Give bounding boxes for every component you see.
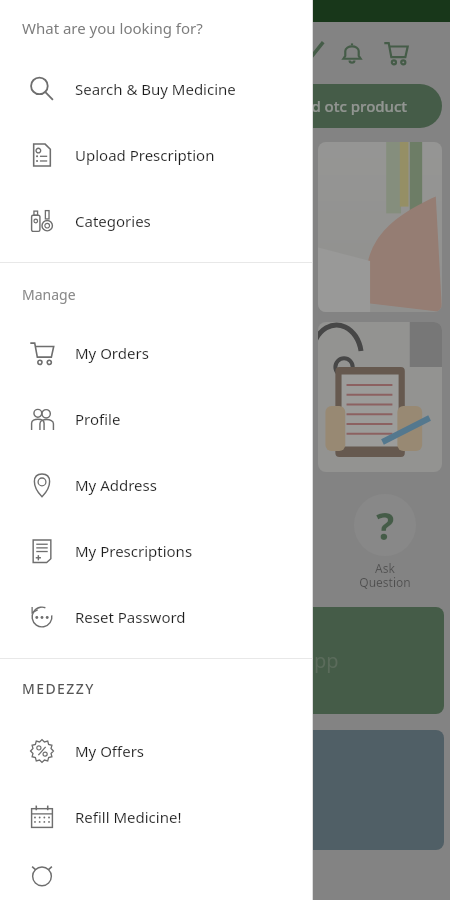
button[interactable]: Notifications xyxy=(330,31,374,75)
button[interactable]: Verified xyxy=(290,33,330,73)
staticText: ? xyxy=(376,499,395,551)
button[interactable]: ? xyxy=(330,494,440,591)
staticText: Refill Medicine! xyxy=(75,807,182,827)
staticText: My Address xyxy=(75,475,157,495)
button[interactable]: Categories xyxy=(0,188,313,254)
staticText: What are you looking for? xyxy=(22,18,203,38)
staticText: My Prescriptions xyxy=(75,541,193,561)
button[interactable]: Cart xyxy=(374,31,418,75)
button[interactable]: My Offers xyxy=(0,718,313,784)
button[interactable]: Search & Buy Medicine xyxy=(0,56,313,122)
staticText: Search & Buy Medicine xyxy=(75,79,236,99)
button[interactable]: My Address xyxy=(0,452,313,518)
button[interactable] xyxy=(318,142,442,312)
staticText: Categories xyxy=(75,211,151,231)
staticText: pp xyxy=(314,647,339,674)
button[interactable]: Refill Medicine! xyxy=(0,784,313,850)
staticText: MEDEZZY xyxy=(22,679,95,698)
button[interactable]: Profile xyxy=(0,386,313,452)
staticText: Manage xyxy=(22,285,76,304)
staticText: nd otc product xyxy=(302,96,408,116)
button[interactable]: My Orders xyxy=(0,320,313,386)
button[interactable]: My Prescriptions xyxy=(0,518,313,584)
staticText: Profile xyxy=(75,409,121,429)
staticText: Upload Prescription xyxy=(75,145,215,165)
button[interactable] xyxy=(300,730,444,850)
staticText: Reset Password xyxy=(75,607,186,627)
staticText: My Offers xyxy=(75,741,145,761)
button[interactable] xyxy=(318,322,442,472)
staticText: Ask Question xyxy=(359,560,411,591)
button[interactable]: pp xyxy=(300,607,444,714)
button[interactable]: Reset Password xyxy=(0,584,313,650)
staticText: My Orders xyxy=(75,343,149,363)
button[interactable]: Upload Prescription xyxy=(0,122,313,188)
button[interactable] xyxy=(0,850,313,900)
button[interactable]: nd otc product xyxy=(240,84,442,128)
